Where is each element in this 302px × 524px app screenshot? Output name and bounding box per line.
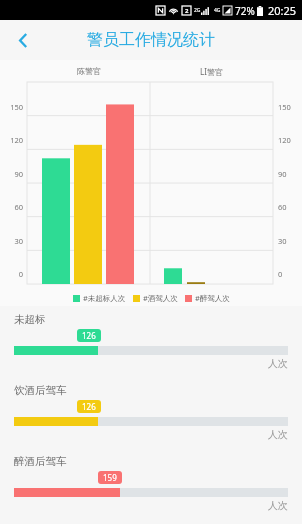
staticText: 30 xyxy=(3,236,23,246)
staticText: 0 xyxy=(3,269,23,279)
button[interactable]: 未超标 xyxy=(0,306,302,377)
staticText: 人次 xyxy=(14,499,288,512)
staticText: #酒驾人次 xyxy=(143,293,178,303)
staticText: 2G xyxy=(194,7,201,14)
staticText: 20:25 xyxy=(268,3,297,18)
staticText: 159 xyxy=(103,472,117,483)
button[interactable]: #醉驾人次 xyxy=(185,293,230,303)
staticText: 60 xyxy=(3,202,23,212)
staticText: 120 xyxy=(278,135,291,145)
staticText: 0 xyxy=(278,269,283,279)
staticText: 未超标 xyxy=(14,313,46,326)
button[interactable]: 饮酒后驾车 xyxy=(0,377,302,448)
staticText: 90 xyxy=(3,169,23,179)
staticText: 醉酒后驾车 xyxy=(14,455,67,468)
staticText: 126 xyxy=(82,330,96,341)
staticText: 150 xyxy=(3,102,23,112)
staticText: 150 xyxy=(278,102,291,112)
button[interactable]: #酒驾人次 xyxy=(133,293,178,303)
button[interactable]: Back xyxy=(6,23,40,57)
button[interactable]: #未超标人次 xyxy=(73,293,126,303)
staticText: 60 xyxy=(278,202,287,212)
staticText: 72% xyxy=(235,4,255,18)
staticText: 90 xyxy=(278,169,287,179)
staticText: LI警官 xyxy=(200,66,223,77)
staticText: 120 xyxy=(3,135,23,145)
staticText: 人次 xyxy=(14,428,288,441)
staticText: 饮酒后驾车 xyxy=(14,384,67,397)
staticText: #未超标人次 xyxy=(83,293,126,303)
staticText: 人次 xyxy=(14,357,288,370)
staticText: 2 xyxy=(185,7,189,15)
staticText: #醉驾人次 xyxy=(195,293,230,303)
staticText: 陈警官 xyxy=(77,66,101,76)
staticText: 警员工作情况统计 xyxy=(87,30,215,50)
button[interactable]: 醉酒后驾车 xyxy=(0,448,302,519)
staticText: 126 xyxy=(82,401,96,412)
staticText: 4G xyxy=(214,7,221,14)
staticText: 30 xyxy=(278,236,287,246)
